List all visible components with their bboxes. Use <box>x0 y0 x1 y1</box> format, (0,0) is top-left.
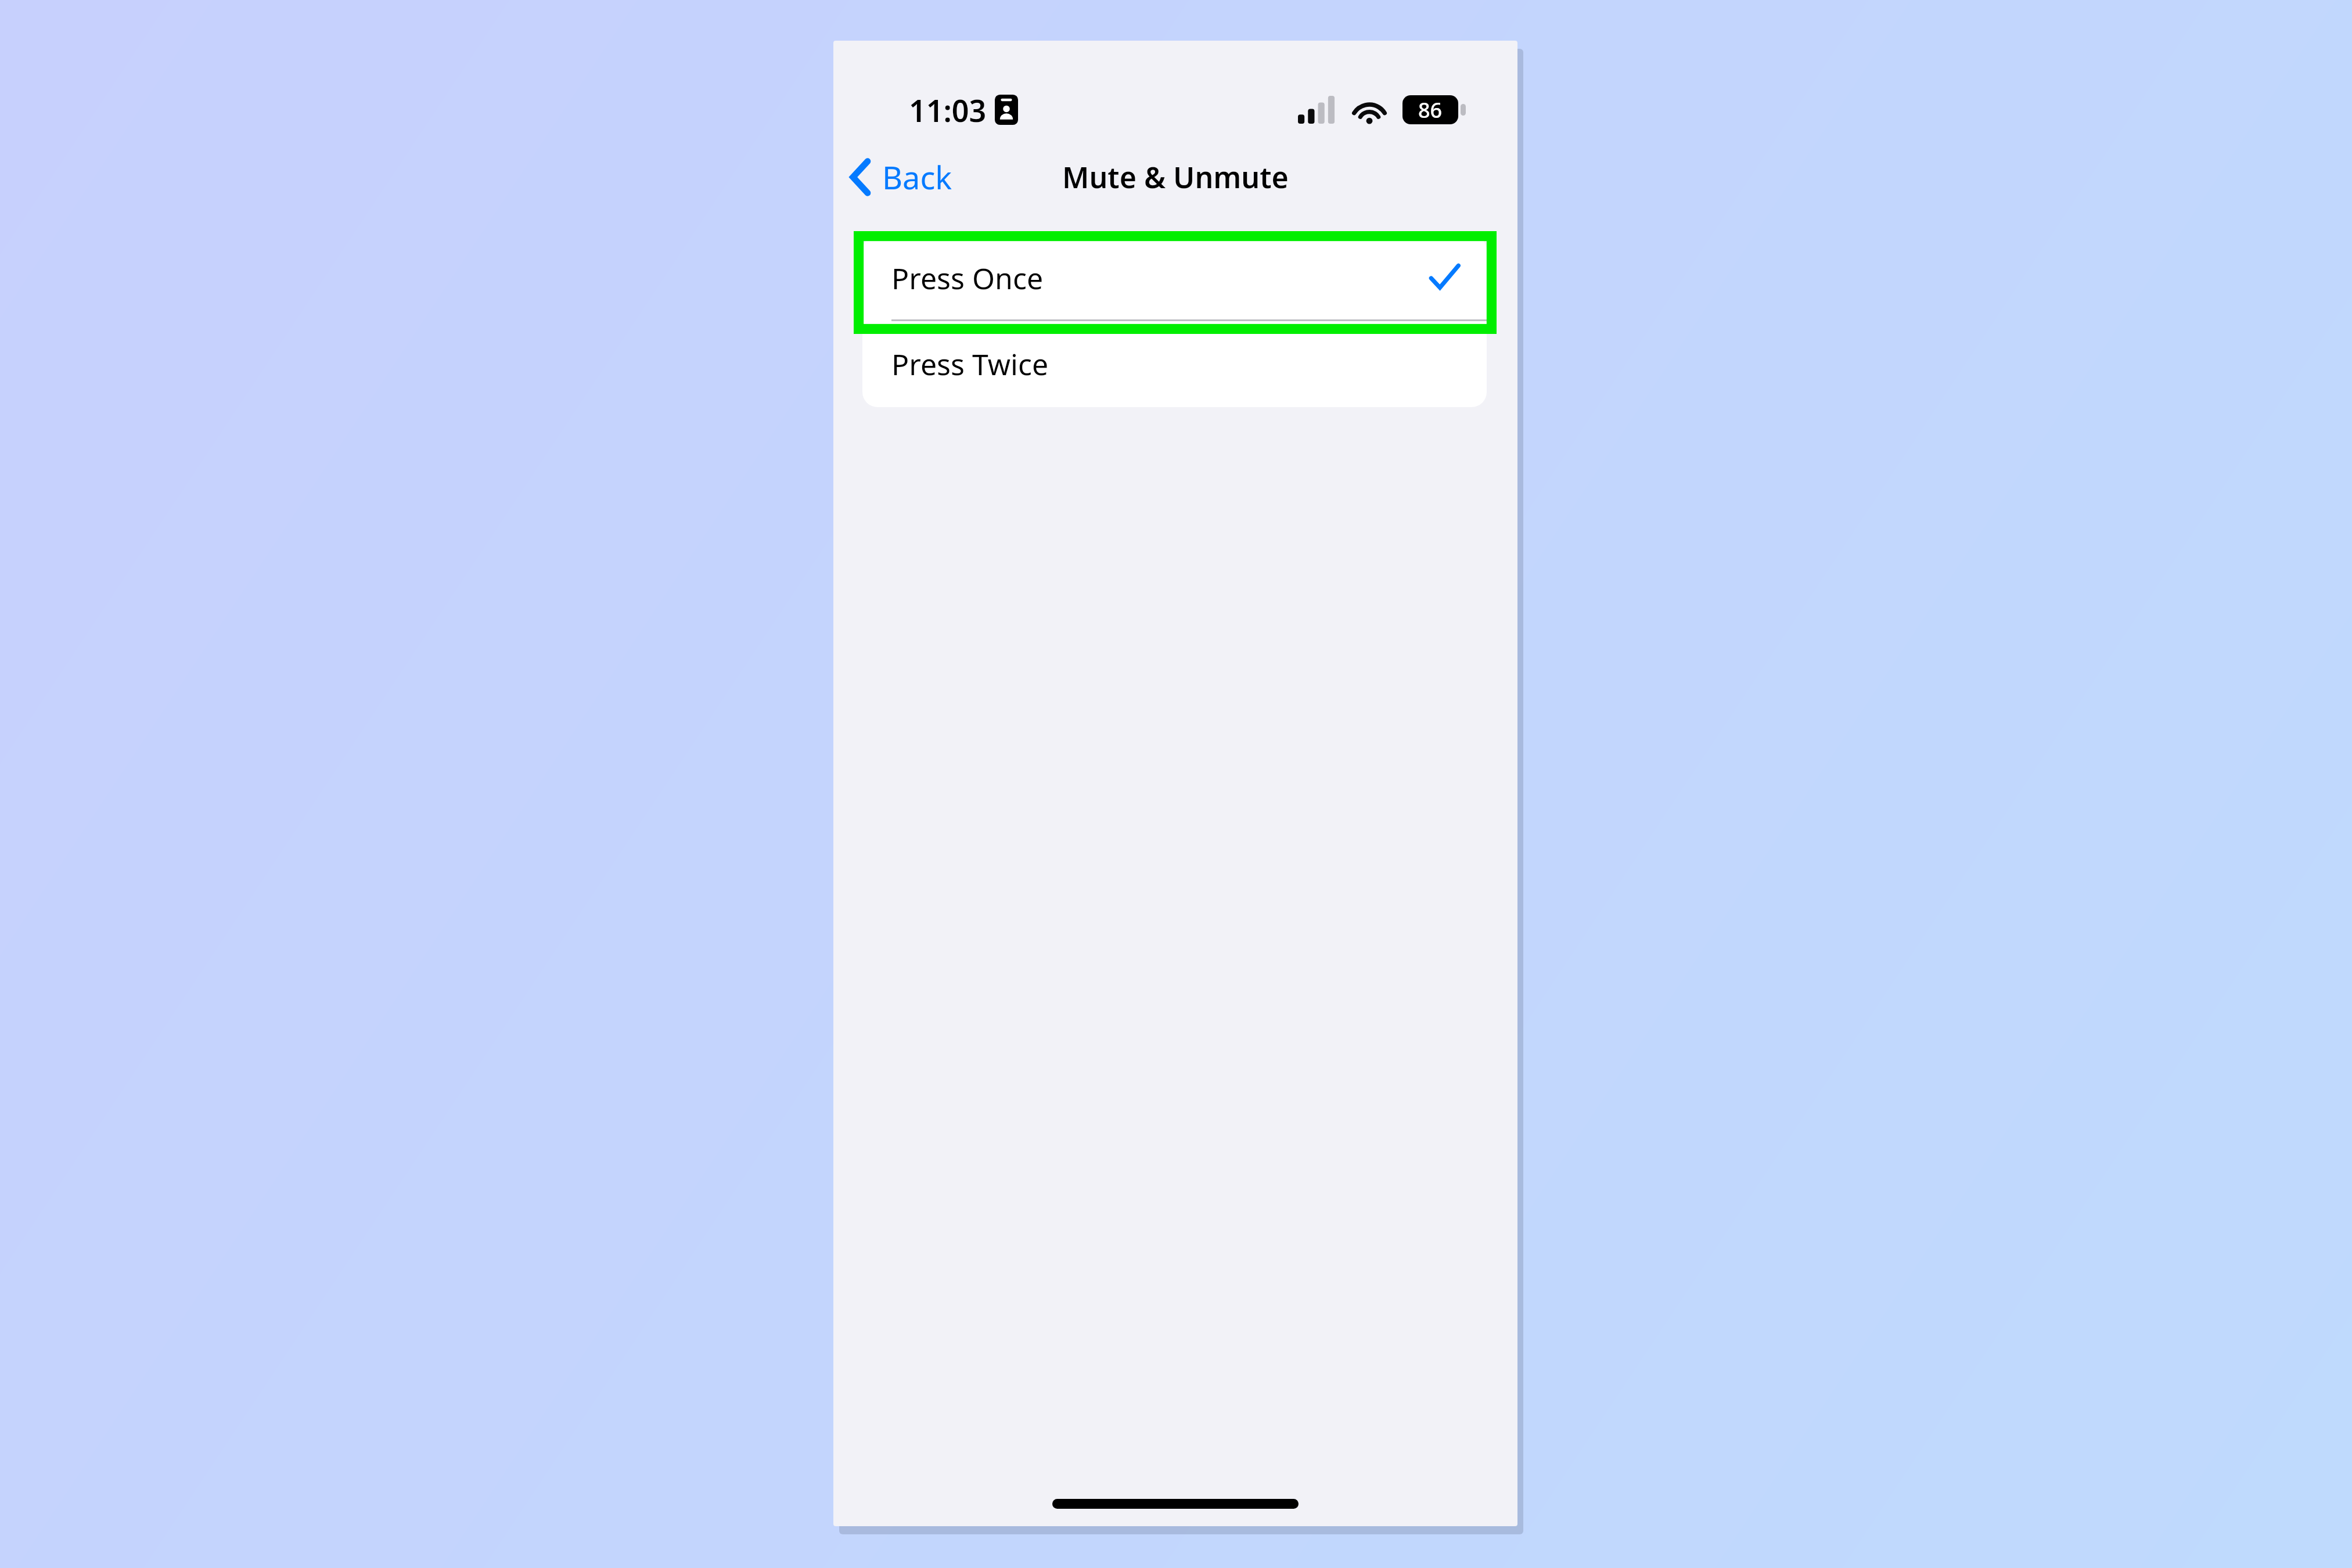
staticText: Press Once <box>891 258 1044 298</box>
staticText: 11:03 <box>909 89 987 131</box>
button[interactable]: Press Once <box>862 235 1487 321</box>
staticText: Mute & Unmute <box>1062 157 1289 197</box>
staticText: Press Twice <box>891 344 1049 384</box>
button[interactable]: Press Twice <box>862 321 1487 407</box>
staticText: 86 <box>1418 96 1443 124</box>
staticText: Back <box>882 156 952 199</box>
button[interactable]: Back <box>841 148 961 206</box>
